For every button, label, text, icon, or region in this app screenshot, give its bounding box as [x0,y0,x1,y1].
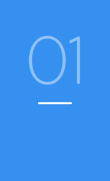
staticText: 01 [25,16,84,104]
